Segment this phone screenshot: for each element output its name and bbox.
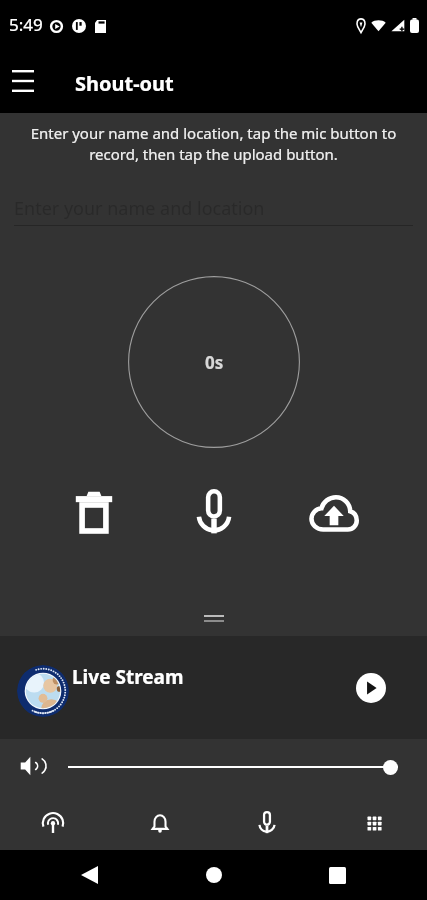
- button[interactable]: More: [320, 795, 427, 850]
- button[interactable]: Play: [356, 673, 386, 703]
- button[interactable]: Live Stream: [0, 636, 427, 739]
- button[interactable]: Shout out: [213, 795, 320, 850]
- button[interactable]: Broadcast: [0, 795, 106, 850]
- button[interactable]: Home: [171, 850, 256, 900]
- other: Volume: [18, 753, 44, 779]
- staticText: Live Stream: [72, 664, 184, 690]
- staticText: Enter your name and location, tap the mi…: [6, 123, 421, 165]
- button[interactable]: Delete recording: [62, 481, 126, 545]
- button[interactable]: Back: [47, 850, 132, 900]
- button[interactable]: Upload: [302, 481, 366, 545]
- staticText: Shout-out: [75, 70, 174, 97]
- button[interactable]: Record: [182, 481, 246, 545]
- button[interactable]: Expand player: [192, 611, 236, 626]
- button[interactable]: Volume level: [383, 760, 398, 775]
- button[interactable]: Recents: [295, 850, 380, 900]
- staticText: 5:49: [9, 13, 43, 36]
- staticText: 0s: [205, 351, 224, 374]
- button[interactable]: Alerts: [106, 795, 213, 850]
- button[interactable]: Open navigation menu: [0, 58, 46, 104]
